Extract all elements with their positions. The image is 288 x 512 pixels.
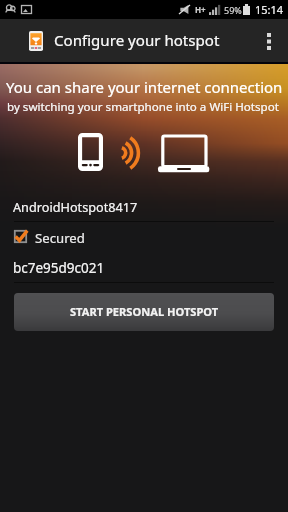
staticText: Configure your hotspot — [54, 30, 220, 51]
button[interactable]: More options — [250, 22, 288, 60]
staticText: H+ — [195, 4, 206, 15]
staticText: You can share your internet connection — [6, 77, 283, 97]
staticText: AndroidHotspot8417 — [13, 198, 138, 215]
staticText: 59% — [224, 4, 242, 16]
button[interactable]: START PERSONAL HOTSPOT — [14, 293, 274, 331]
button[interactable]: AndroidHotspot8417 — [0, 189, 288, 221]
button[interactable]: Secured — [0, 222, 288, 251]
staticText: by switching your smartphone into a WiFi… — [7, 99, 279, 115]
staticText: START PERSONAL HOTSPOT — [70, 304, 219, 319]
staticText: Secured — [35, 229, 85, 247]
staticText: 15:14 — [255, 2, 284, 17]
staticText: bc7e95d9c021 — [13, 259, 105, 277]
button[interactable]: bc7e95d9c021 — [0, 251, 288, 282]
